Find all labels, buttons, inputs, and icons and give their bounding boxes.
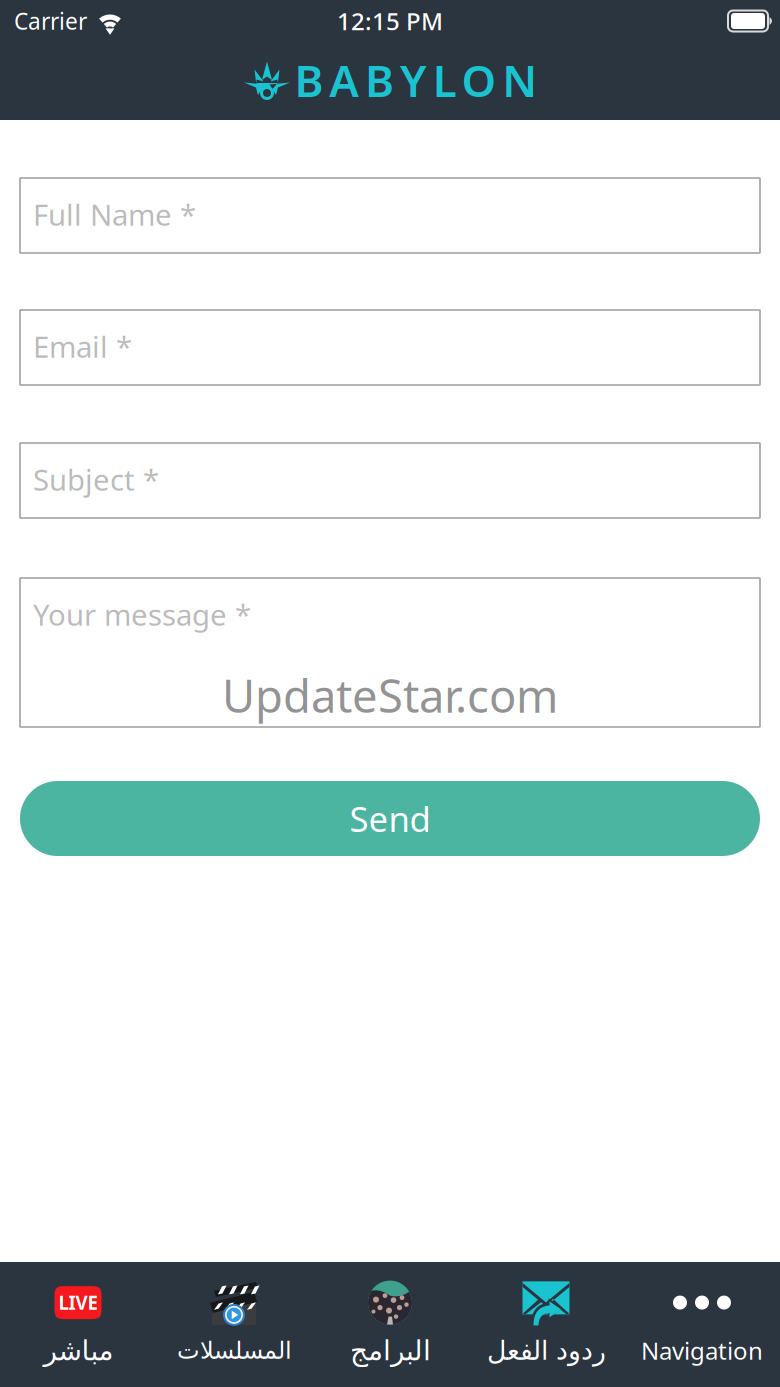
staticText: Navigation [641, 1335, 763, 1366]
button[interactable]: Your message * [20, 578, 760, 727]
staticText: Send [349, 795, 430, 841]
staticText: BABYLON [294, 51, 537, 109]
button[interactable]: Subject * [20, 443, 760, 518]
button[interactable]: Navigation [624, 1267, 780, 1382]
button[interactable]: LIVE [0, 1267, 156, 1382]
button[interactable]: Send [20, 781, 760, 856]
staticText: Your message * [33, 595, 251, 634]
staticText: LIVE [58, 1290, 97, 1315]
button[interactable]: Full Name * [20, 178, 760, 253]
staticText: Full Name * [33, 195, 196, 234]
staticText: UpdateStar.com [222, 665, 558, 725]
staticText: 12:15 PM [337, 5, 443, 37]
button[interactable]: ردود الفعل [468, 1267, 624, 1382]
staticText: Email * [33, 327, 132, 366]
staticText: المسلسلات [176, 1337, 291, 1364]
staticText: البرامج [349, 1335, 430, 1366]
button[interactable]: المسلسلات [156, 1269, 312, 1380]
button[interactable]: Email * [20, 310, 760, 385]
staticText: ردود الفعل [486, 1335, 605, 1366]
staticText: Subject * [33, 460, 159, 499]
staticText: Carrier [14, 6, 87, 36]
staticText: مباشر [43, 1335, 113, 1366]
button[interactable]: البرامج [312, 1267, 468, 1382]
